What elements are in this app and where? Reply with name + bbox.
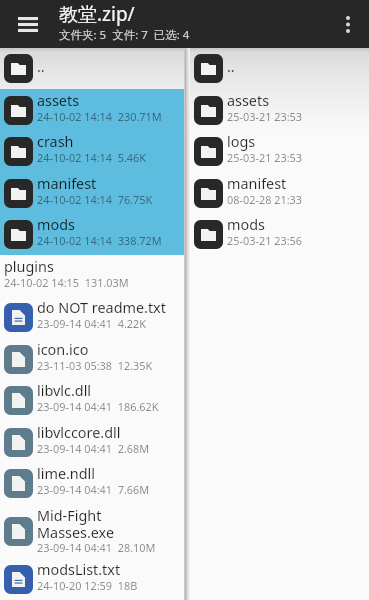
staticText: logs [227,132,256,152]
button[interactable]: do NOT readme.txt [0,297,184,338]
staticText: 23-11-03 05:38 12.35K [37,358,153,373]
button[interactable]: .. [190,48,369,89]
staticText: Mid-Fight Masses.exe [37,506,115,542]
staticText: 24-10-02 14:14 5.46K [37,150,147,165]
staticText: libvlccore.dll [37,423,121,443]
staticText: 文件夹: 5 文件: 7 已选: 4 [59,27,190,43]
button[interactable]: assets [0,89,184,131]
staticText: plugins [4,257,54,277]
staticText: 24-10-20 12:59 18B [37,578,138,593]
button[interactable]: manifest [0,172,184,214]
staticText: 23-09-14 04:41 186.62K [37,399,159,414]
button[interactable]: mods [190,214,369,255]
button[interactable]: libvlc.dll [0,380,184,421]
button[interactable]: logs [190,131,369,172]
staticText: manifest [37,174,97,194]
button[interactable]: More options [327,0,369,48]
staticText: mods [227,215,265,235]
staticText: 24-10-02 14:15 131.03M [4,275,129,290]
staticText: 23-09-14 04:41 7.66M [37,482,150,497]
staticText: 24-10-02 14:14 230.71M [37,109,162,124]
staticText: 25-03-21 23:56 [227,233,303,248]
button[interactable]: crash [0,131,184,172]
button[interactable]: Menu [0,0,55,48]
staticText: icon.ico [37,340,89,360]
staticText: 08-02-28 21:33 [227,192,303,207]
staticText: libvlc.dll [37,381,92,401]
button[interactable]: lime.ndll [0,463,184,504]
button[interactable]: libvlccore.dll [0,421,184,463]
staticText: 教堂.zip/ [59,1,135,27]
staticText: assets [227,91,270,111]
staticText: 25-03-21 23:53 [227,150,303,165]
staticText: assets [37,91,80,111]
button[interactable]: Mid-Fight Masses.exe [0,504,184,558]
staticText: mods [37,215,75,235]
staticText: 23-09-14 04:41 4.22K [37,316,147,331]
staticText: 25-03-21 23:53 [227,109,303,124]
button[interactable]: mods [0,214,184,255]
button[interactable]: icon.ico [0,338,184,380]
staticText: .. [37,57,45,77]
staticText: manifest [227,174,287,194]
staticText: 24-10-02 14:14 338.72M [37,233,162,248]
staticText: lime.ndll [37,464,96,484]
staticText: .. [227,57,235,77]
button[interactable]: plugins [0,255,184,297]
staticText: do NOT readme.txt [37,298,166,318]
staticText: 23-09-14 04:41 28.10M [37,540,156,555]
staticText: crash [37,132,74,152]
button[interactable]: modsList.txt [0,558,184,600]
staticText: 24-10-02 14:14 76.75K [37,192,153,207]
staticText: modsList.txt [37,560,121,580]
button[interactable]: assets [190,89,369,131]
button[interactable]: .. [0,48,184,89]
staticText: 23-09-14 04:41 2.68M [37,441,150,456]
button[interactable]: manifest [190,172,369,214]
